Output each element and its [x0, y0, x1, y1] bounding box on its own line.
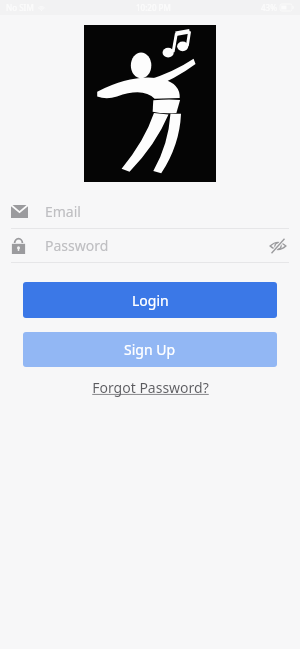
button[interactable]: Sign Up	[23, 332, 277, 367]
button[interactable]: Email	[0, 195, 300, 228]
button[interactable]: Password	[0, 229, 300, 262]
staticText: No SIM	[6, 2, 34, 13]
button[interactable]: Login	[23, 282, 277, 318]
staticText: 43%	[261, 2, 277, 13]
staticText: Login	[132, 291, 169, 310]
staticText: Password	[45, 236, 109, 255]
staticText: Email	[45, 202, 81, 221]
button[interactable]: Forgot Password?	[88, 376, 213, 399]
staticText: 10:20 PM	[136, 2, 171, 13]
staticText: Sign Up	[124, 340, 176, 359]
staticText: Forgot Password?	[92, 378, 209, 397]
button[interactable]: Show password	[267, 235, 289, 257]
